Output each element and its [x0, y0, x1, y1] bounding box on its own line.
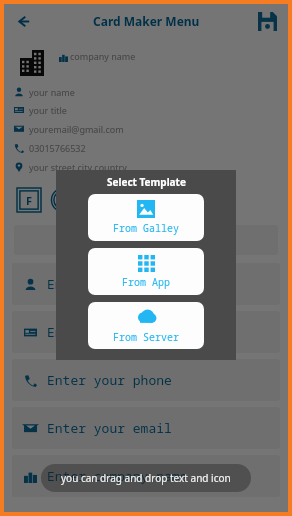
button[interactable]: Enter company name — [12, 455, 280, 497]
staticText: you can drag and drop text and icon — [61, 471, 231, 485]
staticText: Enter your phone — [47, 371, 172, 389]
button[interactable]: Enter your title — [12, 311, 280, 353]
button[interactable]: Logo A — [48, 185, 78, 215]
staticText: company name — [70, 50, 136, 62]
button[interactable]: Save — [252, 6, 282, 36]
staticText: Enter your name — [47, 275, 165, 293]
staticText: Card Maker Menu — [93, 13, 200, 29]
staticText: Enter your title — [47, 323, 172, 341]
staticText: your name — [29, 86, 75, 98]
staticText: youremail@gmail.com — [29, 123, 124, 135]
button[interactable]: Back — [8, 6, 38, 36]
staticText: From Galley — [113, 221, 179, 235]
button[interactable]: Enter your phone — [12, 359, 280, 401]
button[interactable]: Enter your email — [12, 407, 280, 449]
staticText: your title — [29, 104, 67, 116]
button[interactable]: Logo F — [14, 185, 44, 215]
staticText: Enter your email — [47, 419, 172, 437]
staticText: Enter company name — [47, 467, 188, 485]
staticText: F — [26, 193, 33, 208]
button[interactable]: Enter your name — [12, 263, 280, 305]
staticText: From Server — [113, 330, 179, 344]
staticText: your street city country — [29, 161, 127, 173]
button[interactable] — [14, 225, 278, 255]
staticText: From App — [122, 275, 170, 289]
button[interactable]: From App — [88, 248, 204, 295]
staticText: Select Template — [107, 175, 186, 189]
button[interactable]: From Galley — [88, 194, 204, 241]
button[interactable]: From Server — [88, 302, 204, 349]
staticText: 03015766532 — [29, 142, 86, 154]
